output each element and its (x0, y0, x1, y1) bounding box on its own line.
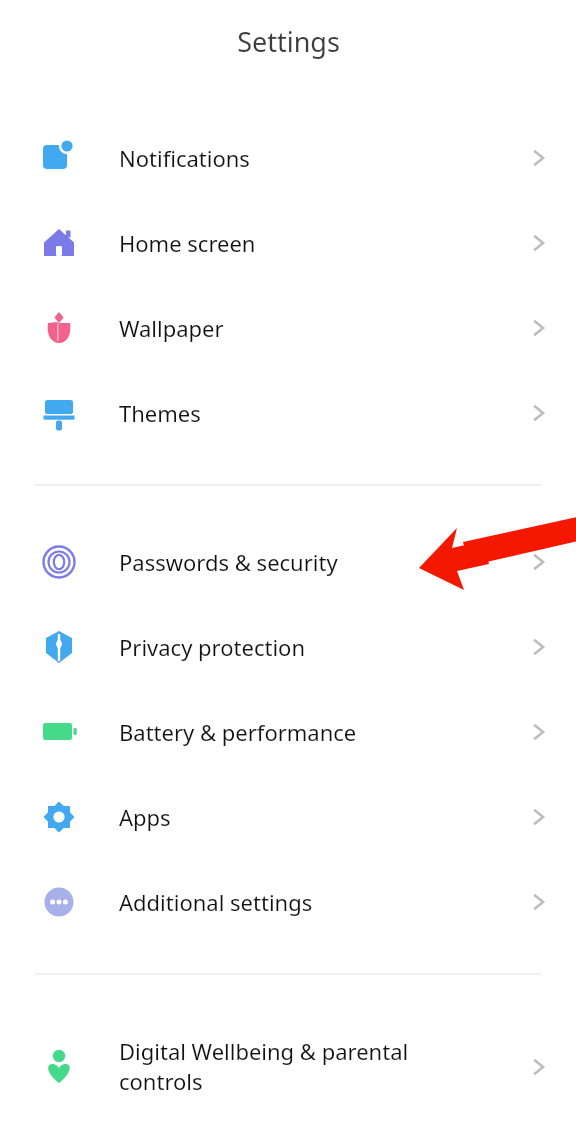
staticText: Apps (119, 802, 509, 832)
button[interactable]: Additional settings (0, 859, 576, 944)
button[interactable]: Home screen (0, 200, 576, 285)
staticText: Settings (237, 23, 340, 60)
staticText: Themes (119, 398, 509, 428)
button[interactable]: Passwords & security (0, 519, 576, 604)
staticText: Notifications (119, 143, 509, 173)
button[interactable]: Battery & performance (0, 689, 576, 774)
staticText: Digital Wellbeing & parental controls (119, 1036, 509, 1097)
staticText: Additional settings (119, 887, 509, 917)
staticText: Passwords & security (119, 547, 509, 577)
button[interactable]: Wallpaper (0, 285, 576, 370)
button[interactable]: Privacy protection (0, 604, 576, 689)
staticText: Wallpaper (119, 313, 509, 343)
button[interactable]: Apps (0, 774, 576, 859)
staticText: Privacy protection (119, 632, 509, 662)
button[interactable]: Themes (0, 370, 576, 455)
button[interactable]: Notifications (0, 115, 576, 200)
staticText: Battery & performance (119, 717, 509, 747)
staticText: Home screen (119, 228, 509, 258)
button[interactable]: Digital Wellbeing & parental controls (0, 1024, 576, 1109)
